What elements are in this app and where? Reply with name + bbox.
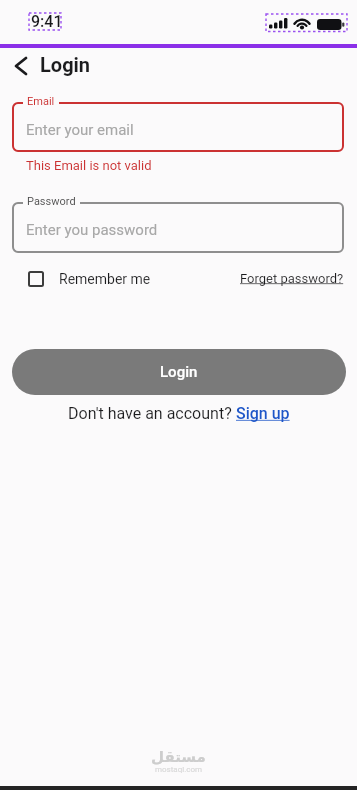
button[interactable]: Don't have an account?	[68, 404, 290, 423]
staticText: 9:41	[31, 12, 63, 31]
staticText: مستقل	[151, 748, 206, 765]
staticText: Enter you password	[26, 221, 158, 239]
button[interactable]: Forget password?	[240, 271, 344, 286]
button[interactable]: Login	[10, 52, 91, 76]
button[interactable]: Enter your email	[12, 102, 344, 152]
staticText: Sign up	[236, 404, 290, 423]
staticText: Enter your email	[26, 121, 134, 139]
staticText: Remember me	[59, 271, 151, 287]
button[interactable]: Remember me	[28, 271, 151, 287]
staticText: Login	[40, 53, 91, 76]
staticText: Don't have an account?	[68, 404, 236, 423]
button[interactable]: Login	[12, 349, 346, 395]
staticText: Password	[27, 195, 76, 208]
button[interactable]: Enter you password	[12, 202, 344, 253]
staticText: This Email is not valid	[26, 158, 152, 173]
staticText: Login	[160, 363, 198, 381]
staticText: mostaql.com	[155, 765, 203, 774]
staticText: Email	[27, 95, 55, 108]
